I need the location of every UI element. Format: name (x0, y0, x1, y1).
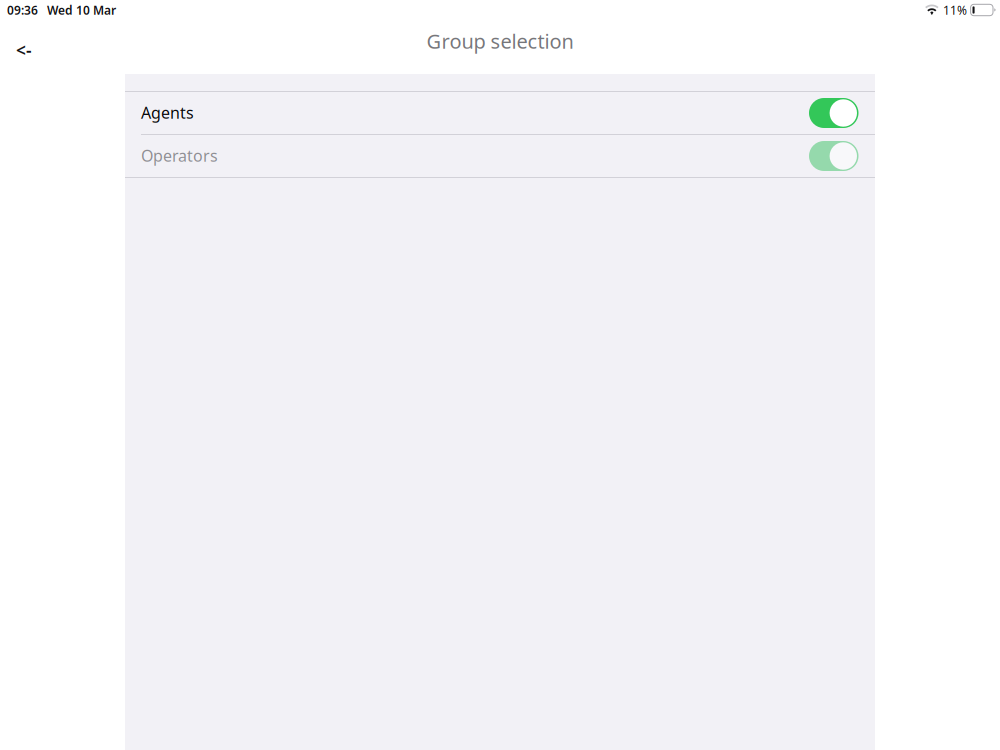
button[interactable]: Operators (125, 135, 875, 178)
button[interactable]: Agents (125, 92, 875, 135)
staticText: 11% (943, 2, 967, 18)
staticText: <- (16, 38, 32, 61)
staticText: Agents (141, 102, 194, 123)
button[interactable]: Back (0, 28, 48, 72)
staticText: Group selection (426, 28, 573, 54)
staticText: 09:36 Wed 10 Mar (7, 2, 116, 18)
staticText: Operators (141, 145, 218, 166)
